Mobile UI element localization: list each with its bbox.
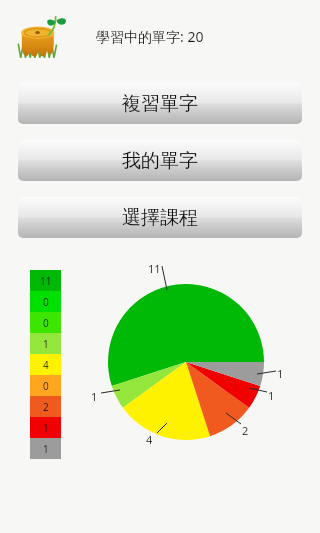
- staticText: 1: [43, 421, 49, 435]
- button[interactable]: 複習單字: [18, 83, 302, 124]
- staticText: 2: [43, 400, 49, 414]
- other: Tree stump logo: [14, 12, 70, 60]
- staticText: 4: [146, 432, 153, 447]
- staticText: 1: [91, 389, 98, 404]
- staticText: 2: [242, 423, 249, 438]
- staticText: 0: [43, 379, 49, 393]
- button[interactable]: 選擇課程: [18, 197, 302, 238]
- staticText: 1: [268, 388, 275, 403]
- staticText: 我的單字: [122, 149, 198, 173]
- staticText: 學習中的單字: 20: [96, 27, 204, 46]
- staticText: 1: [277, 366, 284, 381]
- button[interactable]: 我的單字: [18, 140, 302, 181]
- staticText: 選擇課程: [122, 206, 198, 230]
- staticText: 1: [43, 442, 49, 456]
- staticText: 4: [43, 358, 49, 372]
- staticText: 0: [43, 295, 49, 309]
- staticText: 11: [40, 274, 52, 288]
- staticText: 11: [148, 261, 161, 276]
- staticText: 1: [43, 337, 49, 351]
- staticText: 0: [43, 316, 49, 330]
- staticText: 複習單字: [122, 92, 198, 116]
